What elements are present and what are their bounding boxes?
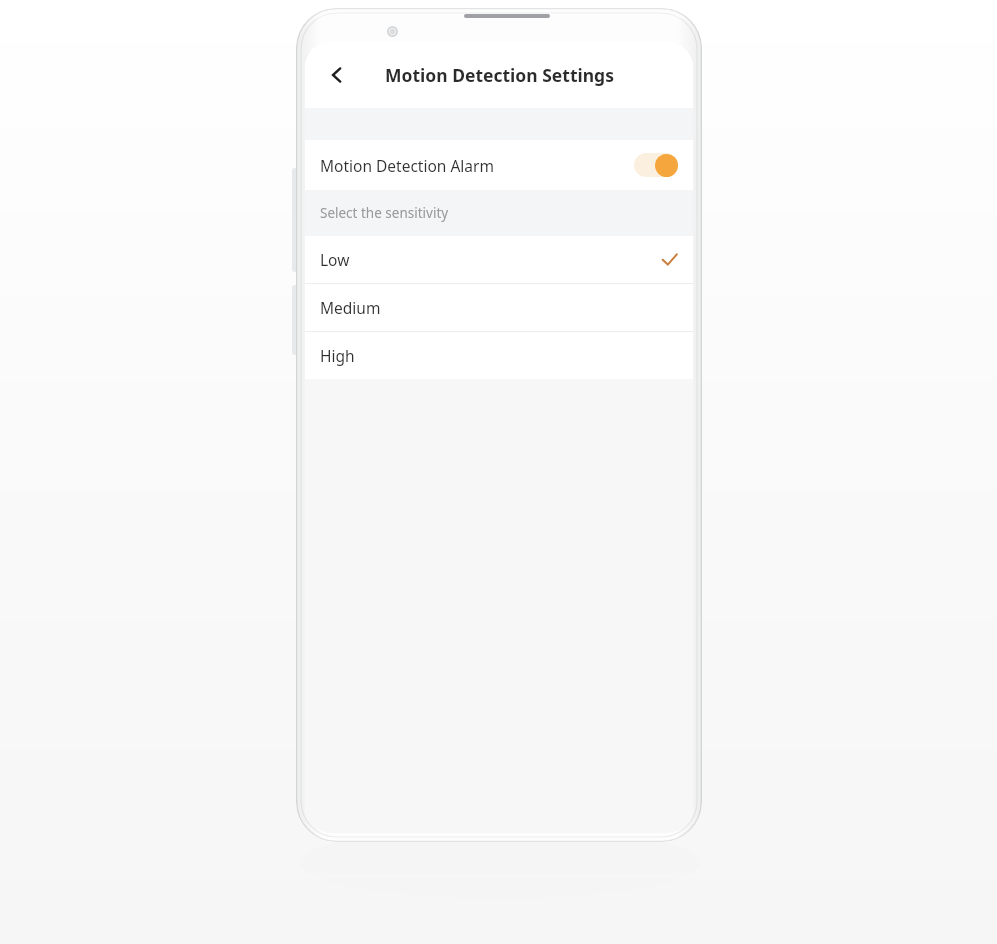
button[interactable]: Low [305, 236, 693, 283]
button[interactable]: Motion Detection Alarm [305, 140, 693, 190]
staticText: Motion Detection Alarm [320, 155, 494, 176]
button[interactable]: High [305, 332, 693, 379]
staticText: Select the sensitivity [320, 204, 449, 222]
staticText: Medium [320, 297, 381, 318]
staticText: Low [320, 249, 350, 270]
staticText: High [320, 345, 355, 366]
button[interactable]: Back [313, 51, 361, 99]
staticText: Motion Detection Settings [385, 63, 614, 87]
button[interactable]: Motion Detection Alarm toggle [634, 153, 678, 177]
button[interactable]: Medium [305, 284, 693, 331]
